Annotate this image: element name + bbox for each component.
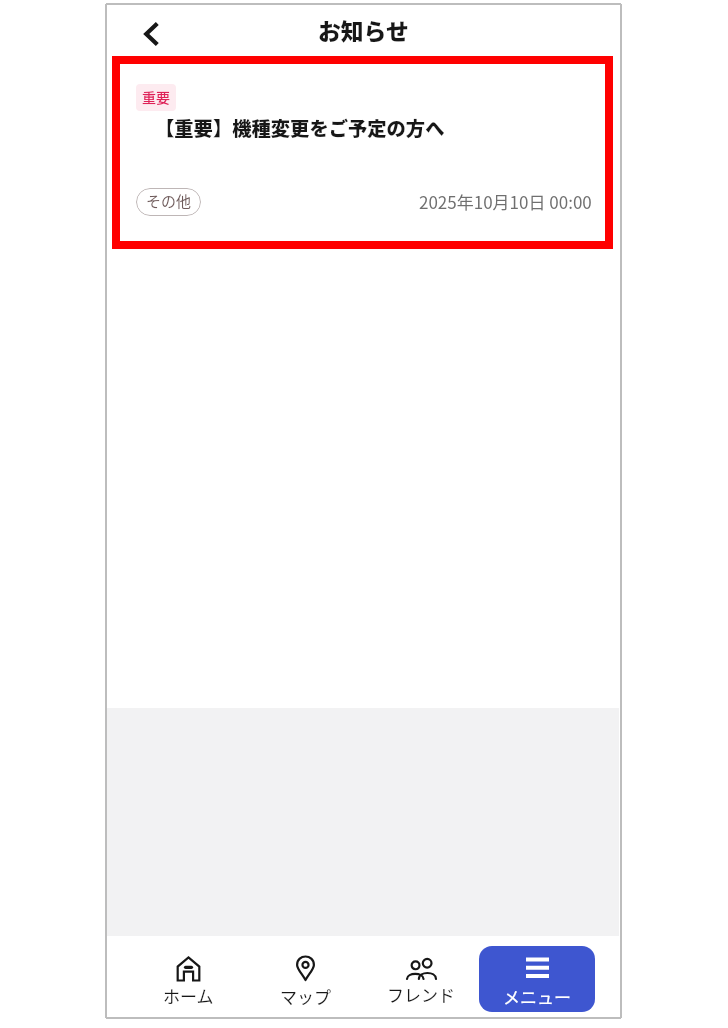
staticText: メニュー bbox=[503, 984, 571, 1009]
staticText: その他 bbox=[146, 190, 192, 212]
staticText: 重要 bbox=[142, 87, 170, 107]
button[interactable]: ホーム bbox=[130, 936, 247, 1016]
staticText: ホーム bbox=[163, 983, 214, 1008]
button[interactable]: 戻る bbox=[129, 11, 175, 57]
staticText: マップ bbox=[280, 984, 331, 1009]
staticText: 2025年10月10日 00:00 bbox=[419, 189, 592, 214]
button[interactable]: メニュー bbox=[479, 946, 595, 1012]
staticText: お知らせ bbox=[318, 14, 409, 47]
button[interactable]: マップ bbox=[247, 936, 363, 1016]
button[interactable]: 重要 bbox=[112, 56, 613, 249]
button[interactable]: フレンド bbox=[363, 936, 479, 1016]
staticText: フレンド bbox=[387, 982, 455, 1007]
staticText: 【重要】機種変更をご予定の方へ bbox=[155, 114, 445, 142]
